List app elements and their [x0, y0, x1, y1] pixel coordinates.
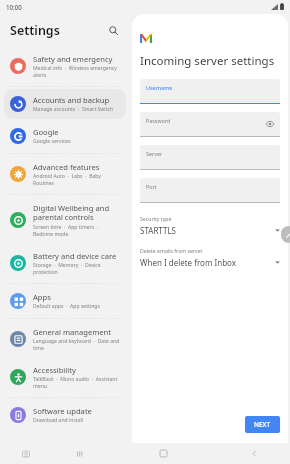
staticText: Server — [146, 150, 163, 157]
staticText: Accounts and backup — [33, 95, 110, 105]
staticText: 10:00 — [6, 3, 22, 11]
button[interactable]: Battery and device care — [4, 245, 126, 281]
staticText: Settings — [10, 22, 106, 39]
button[interactable]: Accessibility — [4, 359, 126, 395]
button[interactable]: General management — [4, 321, 126, 357]
button[interactable]: Security type — [140, 213, 280, 236]
button[interactable]: Accounts and backup — [4, 89, 126, 119]
staticText: Port — [146, 183, 157, 190]
button[interactable]: Software update — [4, 400, 126, 430]
button[interactable]: Apps — [4, 286, 126, 316]
button[interactable]: Password — [140, 112, 280, 136]
staticText: Manage accounts · Smart Switch — [33, 106, 114, 113]
button[interactable]: Username — [140, 79, 280, 103]
staticText: Google — [33, 127, 59, 137]
staticText: Apps — [33, 292, 51, 302]
staticText: Screen time · App timers · Bedtime mode — [33, 224, 120, 237]
staticText: Advanced features — [33, 162, 100, 172]
staticText: Google services — [33, 138, 71, 145]
button[interactable]: Advanced features — [4, 156, 126, 192]
button[interactable]: Edit — [281, 226, 290, 243]
staticText: Medical info · Wireless emergency alerts — [33, 65, 120, 78]
staticText: Default apps · App settings — [33, 303, 100, 310]
button[interactable]: Recents — [52, 443, 108, 464]
staticText: Android Auto · Labs · Baby Routines — [33, 173, 120, 186]
button[interactable]: Server — [140, 145, 280, 169]
button[interactable]: Search — [106, 23, 120, 37]
staticText: Download and install — [33, 417, 84, 424]
button[interactable]: Delete emails from server — [140, 245, 280, 268]
staticText: Storage · Memory · Device protection — [33, 262, 120, 275]
staticText: STARTTLS — [140, 225, 275, 236]
staticText: NEXT — [254, 420, 271, 429]
staticText: Security type — [140, 215, 172, 222]
button[interactable]: Port — [140, 178, 280, 202]
staticText: Incoming server settings — [140, 53, 275, 69]
staticText: Battery and device care — [33, 251, 117, 261]
staticText: Language and keyboard · Date and time — [33, 338, 120, 351]
staticText: Username — [146, 84, 173, 91]
staticText: When I delete from Inbox — [140, 257, 275, 268]
staticText: Digital Wellbeing and parental controls — [33, 203, 120, 223]
button[interactable]: NEXT — [245, 416, 280, 433]
button[interactable]: Screenshot — [0, 443, 52, 464]
staticText: Safety and emergency — [33, 54, 113, 64]
staticText: Password — [146, 117, 171, 124]
other: Show password — [266, 120, 274, 128]
staticText: Software update — [33, 406, 92, 416]
staticText: TalkBack · Mono audio · Assistant menu — [33, 376, 120, 389]
button[interactable]: Digital Wellbeing and parental controls — [4, 197, 126, 243]
button[interactable]: Google — [4, 121, 126, 151]
button[interactable]: Home — [108, 443, 218, 464]
staticText: General management — [33, 327, 112, 337]
staticText: Delete emails from server — [140, 247, 203, 254]
staticText: Accessibility — [33, 365, 76, 375]
button[interactable]: Safety and emergency — [4, 48, 126, 84]
